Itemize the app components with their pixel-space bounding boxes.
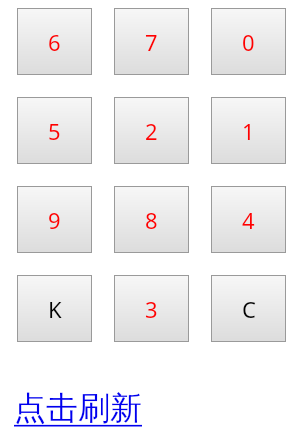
staticText: 8 xyxy=(145,205,158,235)
staticText: 2 xyxy=(145,116,158,146)
staticText: 4 xyxy=(242,205,255,235)
button[interactable]: C xyxy=(211,275,286,342)
button[interactable]: 6 xyxy=(17,8,92,75)
button[interactable]: 点击刷新 xyxy=(14,388,142,428)
staticText: C xyxy=(242,294,256,324)
staticText: 0 xyxy=(242,27,255,57)
button[interactable]: 5 xyxy=(17,97,92,164)
staticText: K xyxy=(48,294,62,324)
button[interactable]: 4 xyxy=(211,186,286,253)
staticText: 3 xyxy=(145,294,158,324)
button[interactable]: 8 xyxy=(114,186,189,253)
button[interactable]: 7 xyxy=(114,8,189,75)
staticText: 1 xyxy=(242,116,255,146)
staticText: 7 xyxy=(145,27,158,57)
button[interactable]: 2 xyxy=(114,97,189,164)
staticText: 9 xyxy=(48,205,61,235)
staticText: 5 xyxy=(48,116,61,146)
staticText: 点击刷新 xyxy=(14,388,142,428)
button[interactable]: 9 xyxy=(17,186,92,253)
staticText: 6 xyxy=(48,27,61,57)
button[interactable]: 3 xyxy=(114,275,189,342)
button[interactable]: K xyxy=(17,275,92,342)
button[interactable]: 0 xyxy=(211,8,286,75)
button[interactable]: 1 xyxy=(211,97,286,164)
